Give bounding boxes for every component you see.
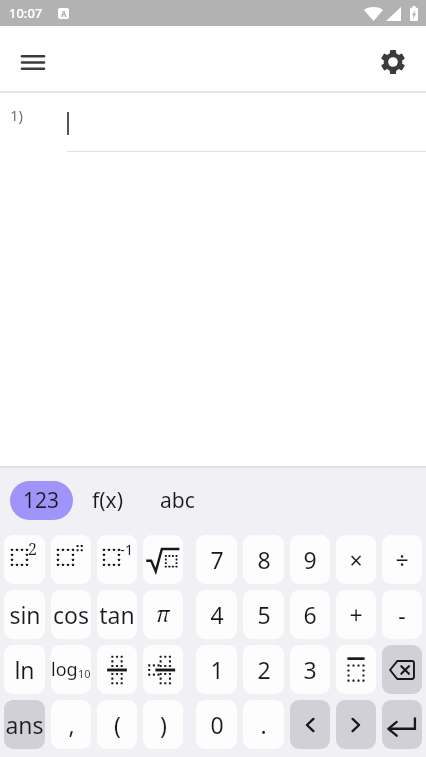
button[interactable]: 5 bbox=[243, 590, 284, 639]
staticText: sin bbox=[9, 599, 41, 630]
button[interactable]: 7 bbox=[196, 535, 237, 584]
button[interactable]: 2 bbox=[243, 645, 284, 694]
staticText: ( bbox=[114, 709, 121, 740]
button[interactable]: Reciprocal bbox=[97, 535, 137, 584]
button[interactable]: . bbox=[243, 700, 284, 749]
button[interactable]: 9 bbox=[290, 535, 330, 584]
button[interactable]: 3 bbox=[290, 645, 330, 694]
staticText: ) bbox=[160, 709, 167, 740]
button[interactable]: Move right bbox=[336, 700, 376, 749]
staticText: abc bbox=[160, 486, 195, 515]
staticText: 1 bbox=[210, 654, 224, 685]
button[interactable]: ÷ bbox=[382, 535, 422, 584]
button[interactable]: + bbox=[336, 590, 376, 639]
button[interactable]: Square root bbox=[143, 535, 183, 584]
staticText: 6 bbox=[303, 599, 317, 630]
staticText: × bbox=[349, 544, 363, 575]
button[interactable]: ( bbox=[97, 700, 137, 749]
button[interactable]: × bbox=[336, 535, 376, 584]
button[interactable]: Power bbox=[51, 535, 91, 584]
button[interactable]: , bbox=[51, 700, 91, 749]
button[interactable]: f(x) bbox=[84, 481, 130, 520]
staticText: - bbox=[398, 599, 406, 630]
button[interactable]: tan bbox=[97, 590, 137, 639]
button[interactable]: abc bbox=[154, 481, 200, 520]
button[interactable]: sin bbox=[4, 590, 45, 639]
button[interactable]: Square bbox=[4, 535, 45, 584]
staticText: 4 bbox=[210, 599, 224, 630]
button[interactable]: - bbox=[382, 590, 422, 639]
button[interactable]: Enter bbox=[382, 700, 422, 749]
button[interactable]: 8 bbox=[243, 535, 284, 584]
button[interactable]: Backspace bbox=[382, 645, 422, 694]
staticText: 1) bbox=[10, 105, 24, 125]
staticText: ln bbox=[14, 654, 35, 685]
staticText: 7 bbox=[210, 544, 224, 575]
staticText: + bbox=[349, 599, 363, 630]
button[interactable]: cos bbox=[51, 590, 91, 639]
button[interactable]: Fraction bbox=[97, 645, 137, 694]
button[interactable]: Open navigation menu bbox=[10, 39, 56, 85]
staticText: 8 bbox=[257, 544, 271, 575]
button[interactable]: 1 bbox=[196, 645, 237, 694]
staticText: 0 bbox=[210, 709, 224, 740]
button[interactable]: 123 bbox=[10, 481, 73, 520]
button[interactable]: ) bbox=[143, 700, 183, 749]
staticText: log bbox=[51, 657, 78, 682]
staticText: 2 bbox=[28, 538, 37, 560]
button[interactable]: Move left bbox=[290, 700, 330, 749]
staticText: tan bbox=[99, 599, 135, 630]
staticText: 10 bbox=[78, 666, 91, 681]
button[interactable]: Settings bbox=[370, 39, 416, 85]
staticText: . bbox=[260, 709, 267, 740]
staticText: 10:07 bbox=[9, 4, 43, 22]
staticText: A bbox=[61, 8, 67, 19]
staticText: 5 bbox=[257, 599, 271, 630]
button[interactable]: ln bbox=[4, 645, 45, 694]
button[interactable]: Logarithm base 10 bbox=[51, 645, 91, 694]
staticText: 9 bbox=[303, 544, 317, 575]
staticText: 3 bbox=[303, 654, 317, 685]
staticText: ÷ bbox=[395, 544, 409, 575]
staticText: , bbox=[68, 709, 75, 740]
staticText: 2 bbox=[257, 654, 271, 685]
staticText: 123 bbox=[23, 486, 60, 515]
staticText: f(x) bbox=[92, 486, 123, 515]
staticText: ans bbox=[5, 709, 44, 740]
staticText: cos bbox=[53, 599, 89, 630]
button[interactable]: Mixed number bbox=[143, 645, 183, 694]
staticText: -1 bbox=[120, 539, 134, 559]
button[interactable]: Repeating decimal bbox=[336, 645, 376, 694]
button[interactable]: 0 bbox=[196, 700, 237, 749]
button[interactable]: ans bbox=[4, 700, 45, 749]
button[interactable]: pi bbox=[143, 590, 183, 639]
button[interactable]: 6 bbox=[290, 590, 330, 639]
staticText: π bbox=[156, 600, 170, 629]
button[interactable]: 4 bbox=[196, 590, 237, 639]
